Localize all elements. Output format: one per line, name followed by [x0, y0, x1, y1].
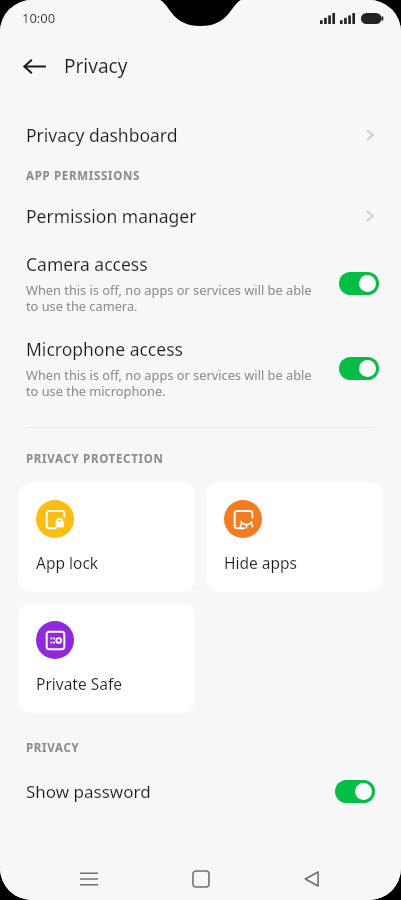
staticText: Camera access	[26, 252, 148, 276]
staticText: When this is off, no apps or services wi…	[26, 366, 325, 400]
button[interactable]: Toggle on	[339, 272, 379, 295]
staticText: PRIVACY	[26, 740, 80, 756]
button[interactable]: Toggle on	[335, 780, 375, 803]
button[interactable]: Home	[178, 858, 224, 900]
button[interactable]: Back	[12, 44, 56, 88]
staticText: Privacy dashboard	[26, 123, 361, 147]
staticText: Privacy	[64, 53, 128, 79]
staticText: Permission manager	[26, 204, 361, 228]
button[interactable]: Hide apps	[206, 482, 383, 592]
button[interactable]: Permission manager	[0, 196, 401, 236]
staticText: 10:00	[22, 9, 56, 27]
staticText: APP PERMISSIONS	[26, 168, 141, 184]
button[interactable]: Toggle on	[339, 357, 379, 380]
button[interactable]: App lock	[18, 482, 195, 592]
button[interactable]: Back	[289, 858, 335, 900]
button[interactable]: Show password	[0, 769, 401, 813]
button[interactable]: Privacy dashboard	[0, 115, 401, 155]
staticText: Private Safe	[36, 673, 122, 694]
button[interactable]: Recent apps	[66, 858, 112, 900]
staticText: App lock	[36, 552, 99, 573]
button[interactable]: Camera access	[0, 252, 401, 315]
staticText: PRIVACY PROTECTION	[26, 451, 164, 467]
staticText: Hide apps	[224, 552, 297, 573]
staticText: Show password	[26, 780, 335, 803]
staticText: When this is off, no apps or services wi…	[26, 281, 325, 315]
staticText: Microphone access	[26, 337, 183, 361]
button[interactable]: Microphone access	[0, 337, 401, 400]
button[interactable]: Private Safe	[18, 603, 195, 713]
